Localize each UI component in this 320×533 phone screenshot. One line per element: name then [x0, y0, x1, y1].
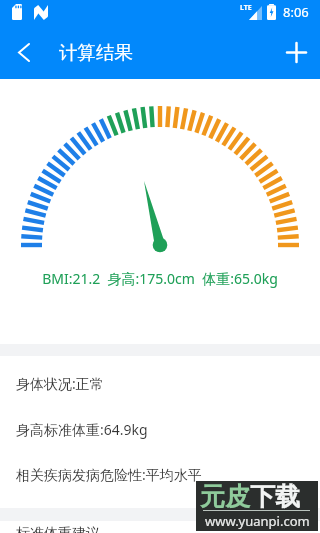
- staticText: 身高标准体重:64.9kg: [16, 420, 148, 439]
- staticText: www.yuanpi.com: [205, 512, 310, 530]
- button[interactable]: 相关疾病发病危险性:平均水平: [0, 452, 320, 497]
- staticText: 下载: [250, 481, 300, 512]
- staticText: 元皮: [200, 481, 250, 512]
- staticText: 身体状况:正常: [16, 374, 104, 393]
- button[interactable]: 标准体重建议: [0, 511, 320, 533]
- staticText: LTE: [240, 3, 252, 13]
- staticText: BMI:21.2 身高:175.0cm 体重:65.0kg: [0, 269, 320, 288]
- button[interactable]: Add: [272, 25, 320, 79]
- button[interactable]: 身高标准体重:64.9kg: [0, 407, 320, 452]
- staticText: 相关疾病发病危险性:平均水平: [16, 465, 202, 484]
- staticText: 标准体重建议: [16, 525, 100, 533]
- button[interactable]: 身体状况:正常: [0, 361, 320, 406]
- button[interactable]: Back: [0, 25, 48, 79]
- staticText: 计算结果: [59, 41, 133, 64]
- staticText: 8:06: [283, 3, 309, 21]
